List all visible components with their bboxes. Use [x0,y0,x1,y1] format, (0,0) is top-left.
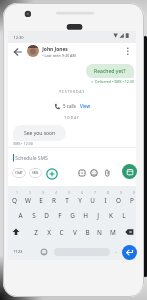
staticText: 9 [120,191,122,195]
staticText: J [97,211,99,220]
staticText: C [59,228,64,237]
staticText: YESTERDAY [59,89,85,94]
staticText: Z [34,228,38,237]
staticText: F [58,211,62,220]
staticText: 1 [16,191,18,195]
staticText: ?123 [13,249,23,255]
staticText: John Jones [42,46,68,53]
staticText: • Last seen 9:30 AM [42,53,76,58]
staticText: M [110,228,116,237]
button[interactable] [122,164,137,179]
button[interactable] [122,245,137,260]
button[interactable] [14,48,22,56]
button[interactable] [90,169,98,177]
staticText: . [115,248,117,255]
staticText: 3 [42,191,44,195]
staticText: L [122,211,126,220]
staticText: O [116,196,121,205]
staticText: TODAY [64,115,80,120]
button[interactable]: 5 calls [42,100,102,111]
staticText: N [97,228,102,237]
staticText: W [25,196,31,205]
button[interactable] [46,168,58,180]
staticText: 0 [133,191,135,195]
staticText: View [80,103,91,109]
staticText: E [39,196,43,205]
staticText: SMS • 12:30 [13,141,33,146]
staticText: 4 [55,191,57,195]
button[interactable] [103,169,111,177]
staticText: I [104,196,107,205]
staticText: Reached yet? [94,68,126,75]
staticText: P [130,196,134,205]
staticText: D [44,211,49,220]
button[interactable] [27,45,39,57]
staticText: T [65,196,69,205]
button[interactable] [125,228,134,236]
staticText: R [52,196,56,205]
staticText: ✓ Delivered • SMS • 12:30 [91,79,134,84]
staticText: V [73,228,77,237]
staticText: 7 [94,191,96,195]
staticText: U [90,196,95,205]
staticText: 8 [107,191,109,195]
button[interactable]: SMS [29,168,42,178]
button[interactable]: CHAT [12,168,26,178]
staticText: S [32,211,36,220]
button[interactable] [78,169,86,177]
button[interactable] [12,228,20,236]
button[interactable] [125,47,131,56]
staticText: K [109,211,113,220]
staticText: G [70,211,75,220]
staticText: Y [78,196,82,205]
staticText: Q [12,196,17,205]
staticText: SMS [32,171,39,175]
staticText: 5 [68,191,70,195]
staticText: See you soon [24,130,56,137]
button[interactable]: Reached yet? [86,64,134,78]
staticText: 2 [29,191,31,195]
button[interactable]: See you soon [13,125,66,141]
staticText: 5 calls [63,103,76,109]
staticText: B [85,228,90,237]
staticText: 6 [81,191,83,195]
button[interactable] [40,248,48,256]
staticText: Schedule SMS [15,155,48,162]
staticText: CHAT [15,171,23,175]
staticText: 12:30 [13,35,24,40]
staticText: H [83,211,88,220]
staticText: A [18,211,23,220]
staticText: X [47,228,51,237]
